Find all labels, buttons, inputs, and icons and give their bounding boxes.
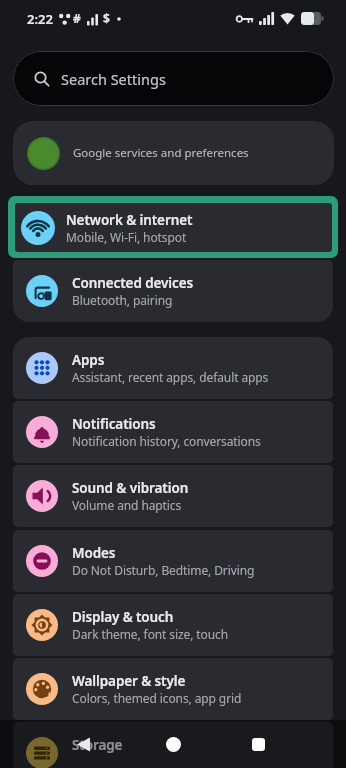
button[interactable]: Network & internet: [8, 196, 338, 258]
staticText: Assistant, recent apps, default apps: [72, 369, 269, 385]
button[interactable]: Display & touch: [13, 594, 333, 656]
button[interactable]: [157, 730, 189, 758]
staticText: Notifications: [72, 415, 156, 433]
staticText: Volume and haptics: [72, 497, 182, 513]
button[interactable]: Sound & vibration: [13, 465, 333, 527]
staticText: Notification history, conversations: [72, 433, 261, 449]
staticText: Display & touch: [72, 608, 174, 626]
staticText: #: [73, 10, 81, 26]
staticText: 2:22: [27, 10, 53, 28]
button[interactable]: Wallpaper & style: [13, 658, 333, 720]
staticText: Modes: [72, 544, 116, 562]
button[interactable]: Notifications: [13, 401, 333, 463]
staticText: $: [103, 10, 110, 26]
button[interactable]: Google services and preferences: [13, 121, 334, 185]
staticText: Bluetooth, pairing: [72, 292, 173, 308]
button[interactable]: Apps: [13, 337, 333, 399]
button[interactable]: Connected devices: [13, 260, 333, 322]
staticText: Dark theme, font size, touch: [72, 626, 229, 642]
staticText: Storage: [72, 736, 123, 754]
staticText: Colors, themed icons, app grid: [72, 690, 242, 706]
staticText: Search Settings: [61, 69, 166, 89]
staticText: Google services and preferences: [73, 145, 249, 161]
staticText: Wallpaper & style: [72, 672, 186, 690]
button[interactable]: Storage: [13, 722, 333, 768]
staticText: Connected devices: [72, 274, 194, 292]
button[interactable]: Modes: [13, 530, 333, 592]
staticText: Sound & vibration: [72, 479, 189, 497]
staticText: Mobile, Wi-Fi, hotspot: [66, 229, 187, 245]
staticText: Network & internet: [66, 211, 193, 229]
button[interactable]: Search Settings: [13, 51, 334, 106]
staticText: Do Not Disturb, Bedtime, Driving: [72, 562, 255, 578]
button[interactable]: [68, 730, 100, 758]
button[interactable]: [242, 730, 274, 758]
staticText: Apps: [72, 351, 105, 369]
